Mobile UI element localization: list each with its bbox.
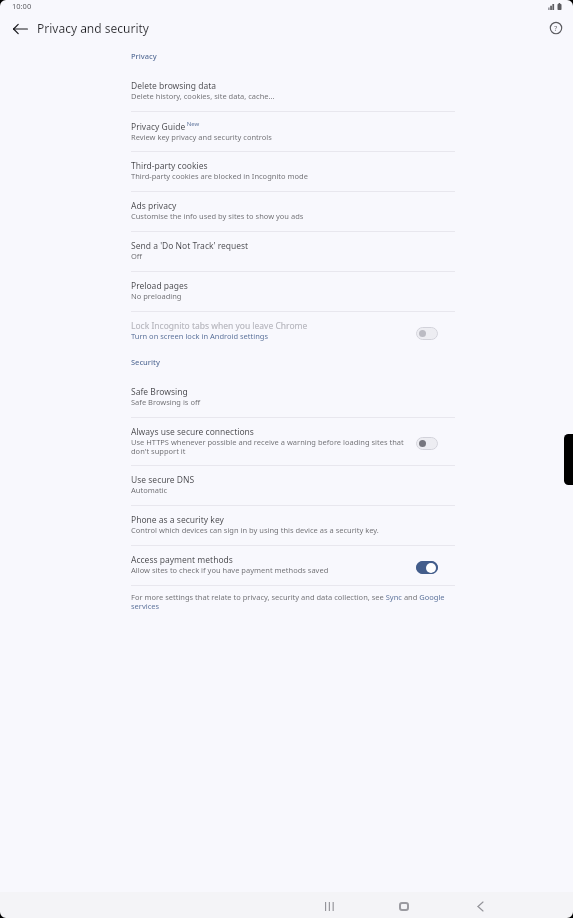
button[interactable]: Ads privacy xyxy=(131,192,455,231)
staticText: Privacy xyxy=(131,51,157,61)
staticText: Third-party cookies are blocked in Incog… xyxy=(131,171,308,181)
button[interactable]: Toggle xyxy=(416,561,438,574)
staticText: Always use secure connections xyxy=(131,426,254,438)
button[interactable]: Help xyxy=(538,12,573,43)
staticText: Turn on screen lock in Android settings xyxy=(131,331,269,341)
button[interactable]: Preload pages xyxy=(131,272,455,311)
staticText: 10:00 xyxy=(12,1,32,11)
staticText: Review key privacy and security controls xyxy=(131,132,272,142)
staticText: Safe Browsing xyxy=(131,386,188,398)
button[interactable]: Send a 'Do Not Track' request xyxy=(131,232,455,271)
button[interactable]: Safe Browsing xyxy=(131,378,455,417)
staticText: Phone as a security key xyxy=(131,514,224,526)
staticText: Send a 'Do Not Track' request xyxy=(131,240,249,252)
staticText: Delete browsing data xyxy=(131,80,217,92)
button[interactable]: Always use secure connections xyxy=(131,418,455,465)
button[interactable]: Back xyxy=(0,12,37,43)
staticText: Safe Browsing is off xyxy=(131,397,201,407)
button[interactable]: Back xyxy=(466,892,494,918)
staticText: Off xyxy=(131,251,143,261)
staticText: Delete history, cookies, site data, cach… xyxy=(131,91,275,101)
button[interactable]: Toggle xyxy=(416,437,438,450)
button[interactable]: Lock Incognito tabs when you leave Chrom… xyxy=(131,312,455,350)
button[interactable]: Toggle xyxy=(416,327,438,340)
staticText: Access payment methods xyxy=(131,554,233,566)
staticText: Security xyxy=(131,357,160,367)
button[interactable]: Access payment methods xyxy=(131,546,455,585)
button[interactable]: Privacy Guide New xyxy=(131,112,455,151)
button[interactable]: Recent apps xyxy=(315,892,343,918)
staticText: Ads privacy xyxy=(131,200,177,212)
button[interactable]: Delete browsing data xyxy=(131,72,455,111)
staticText: Customise the info used by sites to show… xyxy=(131,211,304,221)
staticText: Privacy and security xyxy=(37,20,149,36)
staticText: Allow sites to check if you have payment… xyxy=(131,565,329,575)
staticText: Control which devices can sign in by usi… xyxy=(131,525,379,535)
button[interactable]: Use secure DNS xyxy=(131,466,455,505)
button[interactable]: Home xyxy=(390,892,418,918)
staticText: ? xyxy=(554,23,558,33)
staticText: Lock Incognito tabs when you leave Chrom… xyxy=(131,320,308,332)
staticText: For more settings that relate to privacy… xyxy=(131,592,455,611)
staticText: Preload pages xyxy=(131,280,188,292)
button[interactable]: Third-party cookies xyxy=(131,152,455,191)
staticText: Use secure DNS xyxy=(131,474,195,486)
staticText: Use HTTPS whenever possible and receive … xyxy=(131,437,406,456)
staticText: Third-party cookies xyxy=(131,160,208,172)
staticText: No preloading xyxy=(131,291,182,301)
button[interactable]: Phone as a security key xyxy=(131,506,455,545)
staticText: Automatic xyxy=(131,485,168,495)
staticText: Privacy Guide New xyxy=(131,120,200,133)
